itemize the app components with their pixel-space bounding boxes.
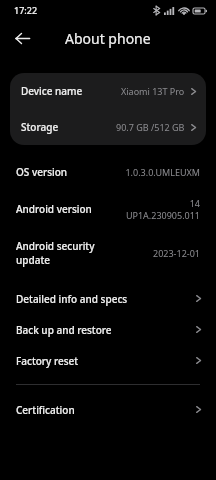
button[interactable]: Certification bbox=[0, 394, 216, 425]
button[interactable]: Android version bbox=[0, 188, 216, 230]
staticText: Detailed info and specs bbox=[16, 292, 194, 306]
staticText: Device name bbox=[21, 84, 83, 98]
staticText: Xiaomi 13T Pro bbox=[121, 85, 185, 97]
staticText: About phone bbox=[65, 29, 151, 48]
staticText: Back up and restore bbox=[16, 323, 194, 337]
button[interactable]: Detailed info and specs bbox=[0, 283, 216, 314]
button[interactable]: Storage bbox=[10, 109, 206, 145]
button[interactable]: Back up and restore bbox=[0, 314, 216, 345]
staticText: 17:22 bbox=[14, 4, 38, 16]
staticText: 2023-12-01 bbox=[153, 247, 200, 259]
button[interactable]: Android security update bbox=[0, 230, 216, 276]
staticText: Certification bbox=[16, 403, 194, 417]
staticText: Android security update bbox=[16, 239, 153, 267]
staticText: Android version bbox=[16, 202, 125, 216]
button[interactable]: Factory reset bbox=[0, 345, 216, 376]
staticText: 90.7 GB /512 GB bbox=[116, 121, 185, 133]
staticText: 1.0.3.0.UMLEUXM bbox=[125, 166, 200, 178]
staticText: Storage bbox=[21, 120, 59, 134]
button[interactable]: OS version bbox=[0, 156, 216, 188]
staticText: UP1A.230905.011 bbox=[125, 209, 200, 221]
button[interactable]: Back bbox=[6, 22, 38, 54]
staticText: Factory reset bbox=[16, 354, 194, 368]
staticText: 14 bbox=[189, 197, 200, 209]
button[interactable]: Device name bbox=[10, 73, 206, 109]
staticText: OS version bbox=[16, 165, 125, 179]
